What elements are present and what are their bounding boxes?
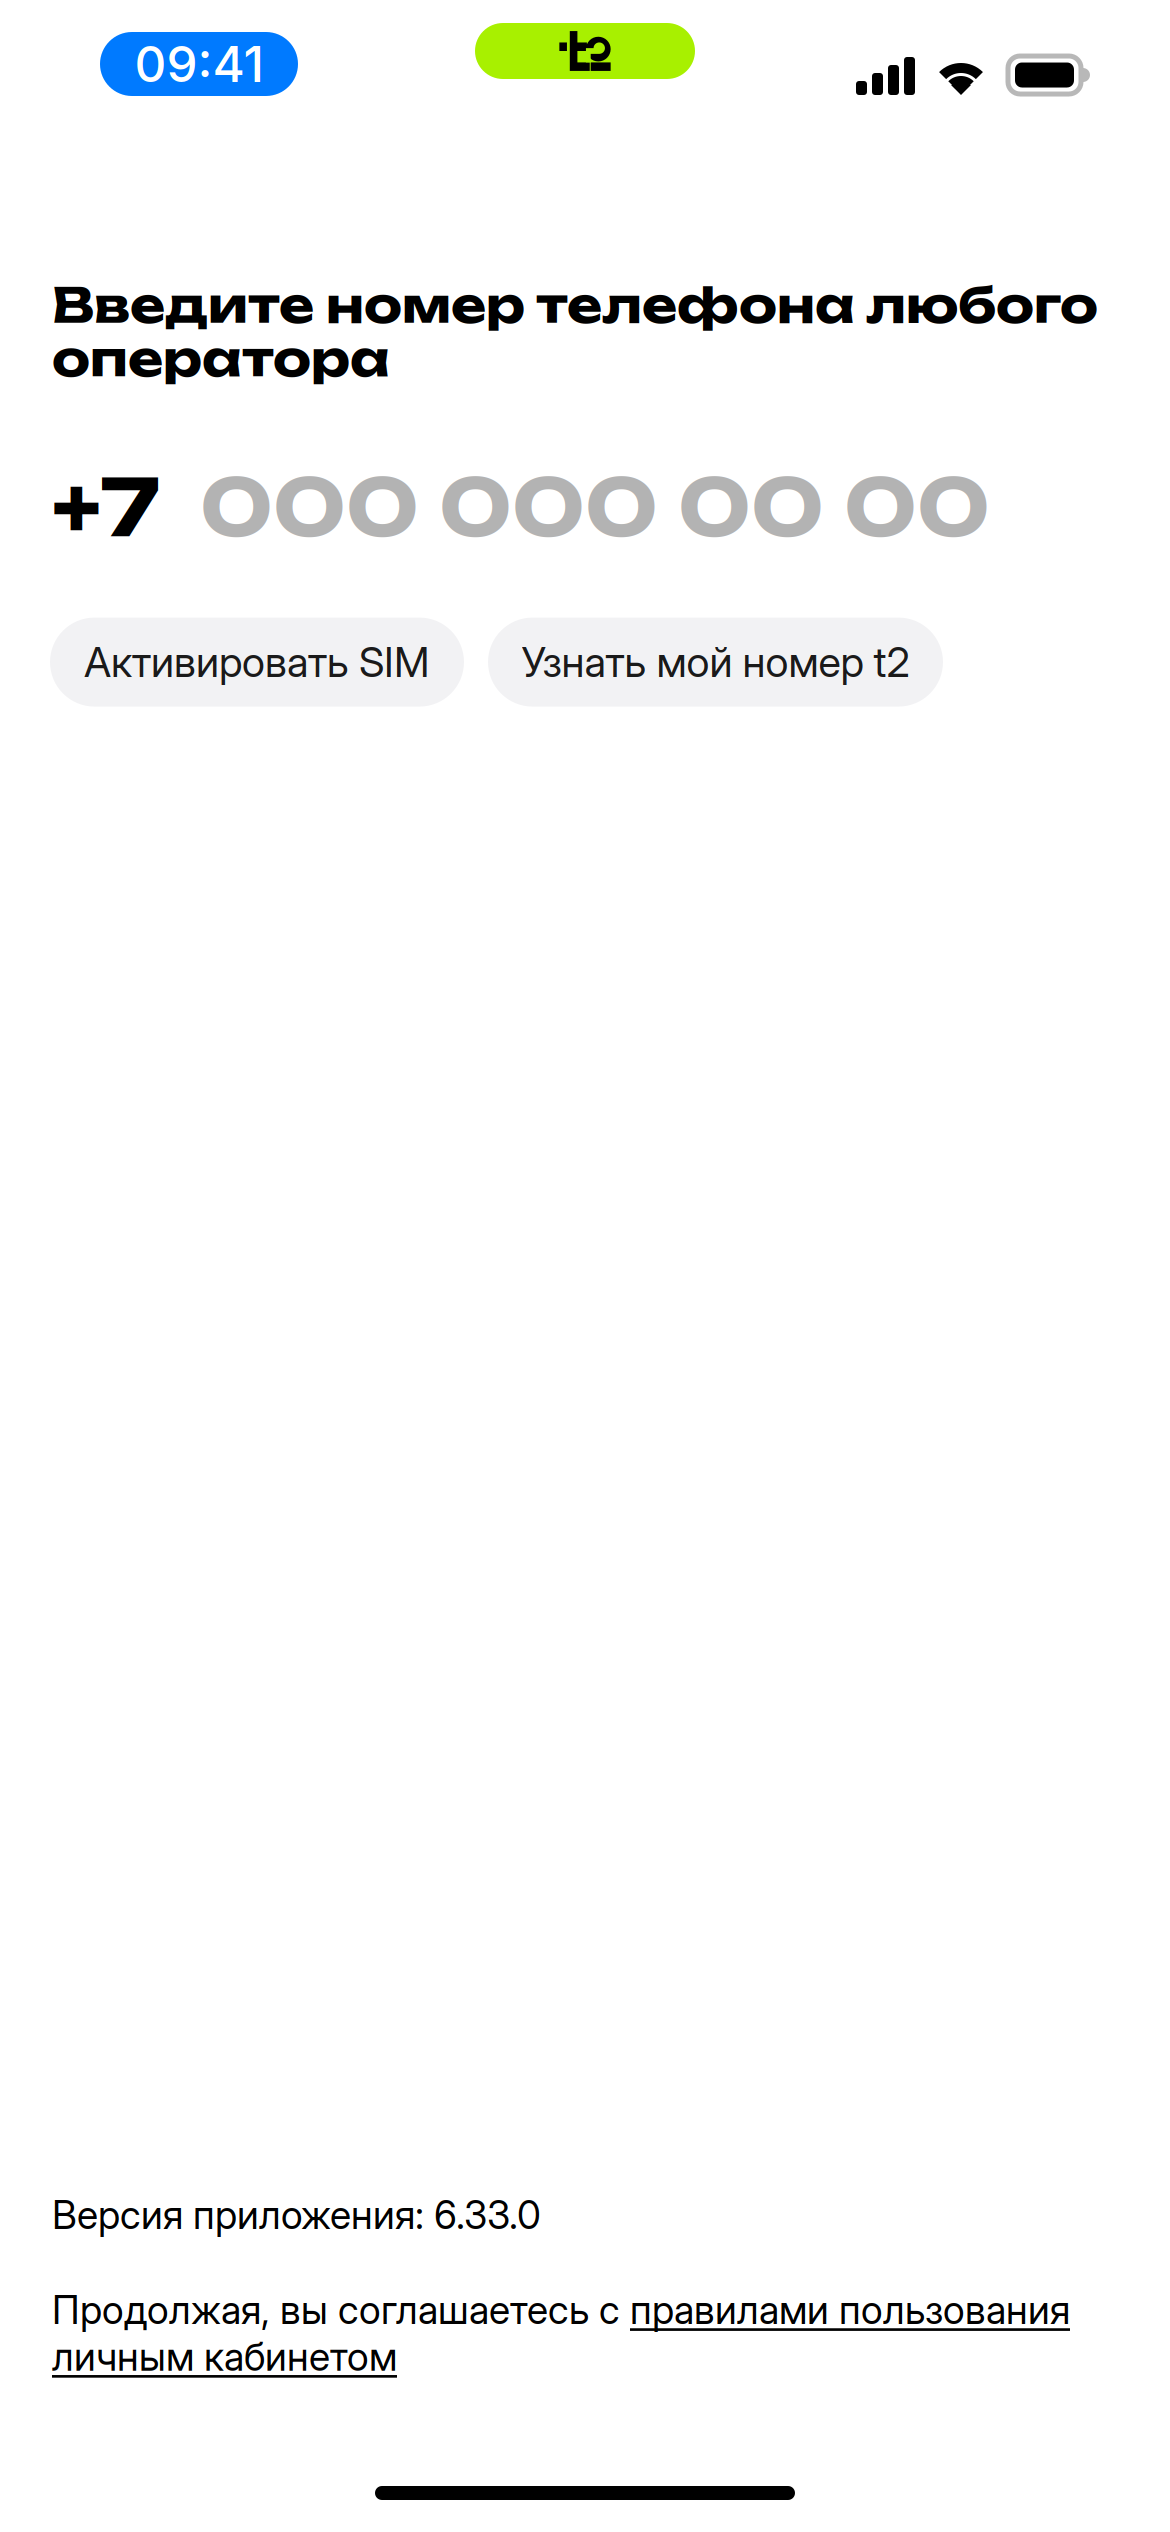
staticText: Продолжая, вы соглашаетесь с правилами п…: [52, 2286, 1070, 2380]
button[interactable]: +7: [0, 388, 990, 555]
staticText: 000 000 00 00: [160, 458, 990, 555]
staticText: Версия приложения: 6.33.0: [52, 2192, 541, 2238]
button[interactable]: Продолжая, вы соглашаетесь с правилами п…: [0, 2238, 1132, 2380]
staticText: оператора: [52, 328, 390, 388]
staticText: Активировать SIM: [84, 637, 430, 687]
staticText: Узнать мой номер t2: [521, 637, 909, 687]
staticText: 09:41: [134, 34, 263, 94]
staticText: +7: [52, 458, 160, 555]
button[interactable]: Активировать SIM: [50, 618, 464, 707]
button[interactable]: Узнать мой номер t2: [488, 618, 943, 707]
staticText: Введите номер телефона любого: [52, 275, 1098, 334]
